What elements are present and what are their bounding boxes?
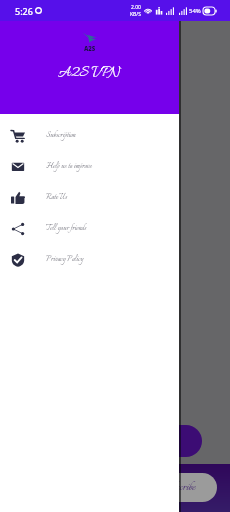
staticText: Subscription xyxy=(46,130,76,141)
button[interactable]: Help us to improve xyxy=(0,151,179,182)
staticText: 5:26 xyxy=(15,5,33,17)
staticText: A2S xyxy=(84,45,96,53)
button[interactable]: Subscribe xyxy=(140,473,217,502)
staticText: 54% xyxy=(189,7,201,15)
staticText: Subscribe xyxy=(162,480,196,496)
button[interactable]: Tell your friends xyxy=(0,213,179,244)
staticText: A2S VPN xyxy=(58,64,121,83)
staticText: Privacy Policy xyxy=(46,254,84,265)
button[interactable]: Subscription xyxy=(0,120,179,151)
button[interactable]: Connect xyxy=(140,425,202,457)
staticText: Rate Us xyxy=(46,192,68,203)
staticText: Help us to improve xyxy=(46,161,92,172)
button[interactable]: Rate Us xyxy=(0,182,179,213)
staticText: Tell your friends xyxy=(46,223,87,234)
staticText: KB/S xyxy=(130,11,141,18)
button[interactable]: Privacy Policy xyxy=(0,244,179,275)
staticText: 2.00 xyxy=(131,4,141,11)
